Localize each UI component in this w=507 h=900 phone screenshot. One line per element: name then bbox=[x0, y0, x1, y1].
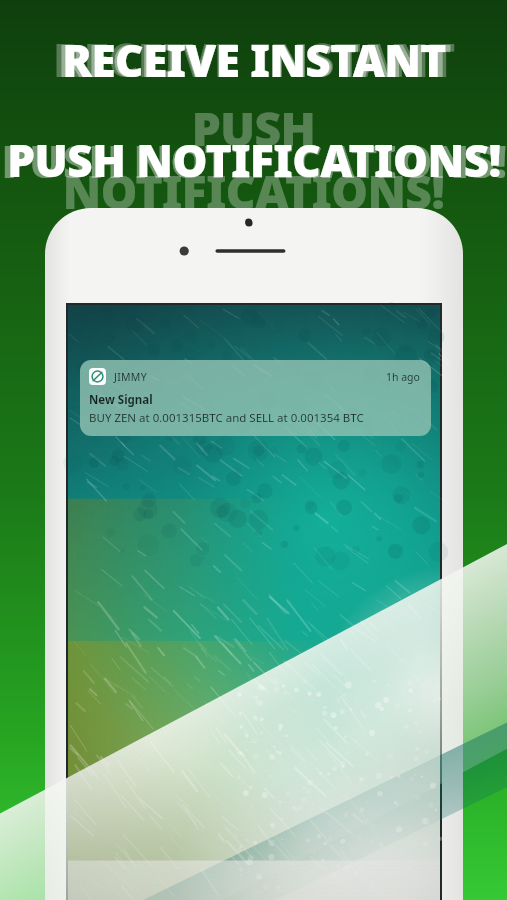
staticText: RECEIVE INSTANT bbox=[53, 28, 455, 91]
staticText: BUY ZEN at 0.001315BTC and SELL at 0.001… bbox=[89, 410, 364, 426]
other: JIMMY app icon bbox=[89, 368, 106, 385]
button[interactable]: JIMMY app icon bbox=[80, 360, 431, 436]
staticText: JIMMY bbox=[114, 370, 147, 384]
staticText: RECEIVE INSTANT bbox=[62, 30, 446, 90]
staticText: 1h ago bbox=[386, 370, 420, 384]
staticText: PUSH NOTIFICATIONS! bbox=[0, 97, 507, 223]
staticText: New Signal bbox=[89, 392, 153, 408]
staticText: PUSH NOTIFICATIONS! bbox=[1, 130, 507, 191]
staticText: PUSH NOTIFICATIONS! bbox=[7, 130, 501, 190]
staticText: RECEIVE INSTANT bbox=[58, 29, 451, 90]
